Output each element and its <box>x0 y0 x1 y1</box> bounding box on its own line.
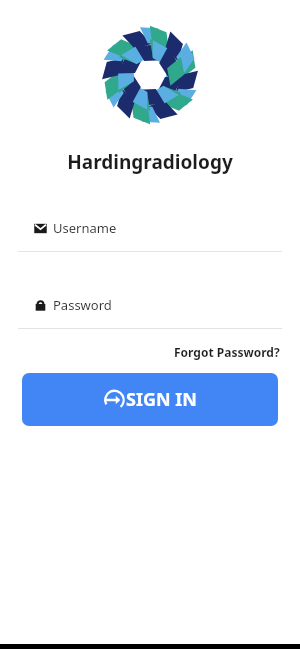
other: Password <box>34 299 47 312</box>
staticText: Username <box>53 219 117 237</box>
staticText: SIGN IN <box>126 387 197 412</box>
staticText: Password <box>53 296 112 314</box>
button[interactable]: SIGN IN <box>22 373 278 426</box>
staticText: Hardingradiology <box>67 149 233 175</box>
other: Hardingradiology logo <box>102 27 198 123</box>
button[interactable]: Username <box>0 219 300 252</box>
button[interactable]: Password <box>0 296 300 329</box>
button[interactable]: Forgot Password? <box>172 342 282 362</box>
staticText: Forgot Password? <box>174 344 280 360</box>
other: Username <box>34 222 47 235</box>
